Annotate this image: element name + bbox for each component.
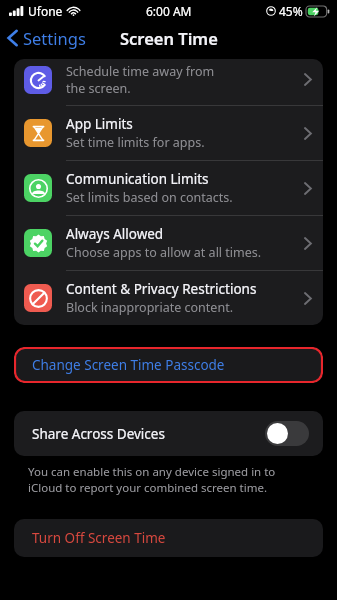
staticText: Screen Time (120, 27, 218, 49)
staticText: Set time limits for apps. (66, 134, 205, 151)
button[interactable]: App Limits (14, 106, 323, 160)
button[interactable]: Always Allowed (14, 216, 323, 270)
staticText: Block inappropriate content. (66, 299, 233, 316)
staticText: Content & Privacy Restrictions (66, 280, 257, 298)
staticText: Choose apps to allow at all times. (66, 244, 262, 261)
button[interactable]: Downtime (14, 59, 323, 105)
staticText: Set limits based on contacts. (66, 189, 233, 206)
staticText: App Limits (66, 115, 133, 133)
staticText: Turn Off Screen Time (32, 529, 166, 547)
staticText: Always Allowed (66, 225, 164, 243)
staticText: Settings (23, 27, 86, 49)
button[interactable]: Share Across Devices (14, 411, 323, 456)
button[interactable]: Change Screen Time Passcode (14, 347, 323, 383)
staticText: 45% (279, 3, 303, 19)
staticText: Ufone (28, 3, 63, 19)
staticText: You can enable this on any device signed… (28, 464, 276, 495)
staticText: Communication Limits (66, 170, 209, 188)
staticText: Share Across Devices (32, 425, 165, 443)
button[interactable]: Content & Privacy Restrictions (14, 271, 323, 325)
staticText: 6:00 AM (146, 3, 192, 19)
button[interactable]: Settings (0, 23, 94, 53)
staticText: Change Screen Time Passcode (32, 356, 225, 374)
staticText: Schedule time away from the screen. (66, 63, 215, 96)
button[interactable]: Turn Off Screen Time (14, 519, 323, 557)
button[interactable]: Communication Limits (14, 161, 323, 215)
